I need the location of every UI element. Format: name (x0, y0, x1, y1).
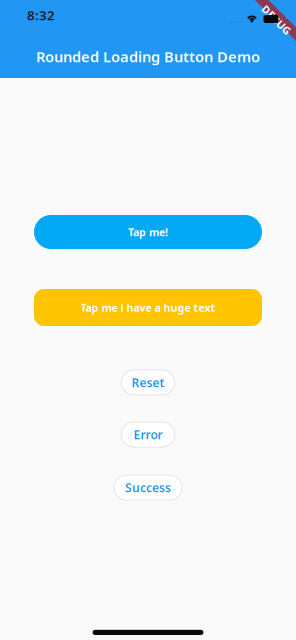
staticText: Tap me i have a huge text (80, 300, 215, 315)
staticText: 8:32 (27, 6, 55, 24)
staticText: Rounded Loading Button Demo (36, 47, 260, 66)
staticText: Success (125, 479, 171, 495)
staticText: Reset (131, 374, 164, 390)
button[interactable]: Tap me! (34, 215, 262, 249)
button[interactable]: Error (121, 422, 175, 447)
staticText: Error (133, 426, 162, 442)
staticText: Tap me! (128, 225, 168, 239)
button[interactable]: Tap me i have a huge text (34, 289, 262, 326)
button[interactable]: Reset (121, 370, 175, 395)
staticText: DEBUG (258, 13, 295, 27)
button[interactable]: Success (114, 475, 182, 500)
